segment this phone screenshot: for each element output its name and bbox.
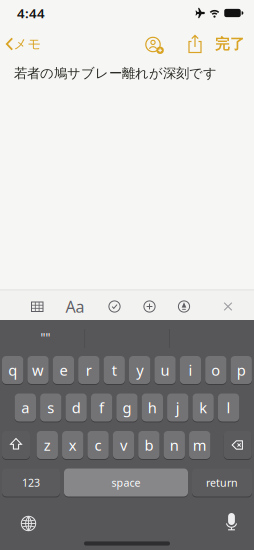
staticText: b xyxy=(144,435,153,455)
staticText: return xyxy=(206,475,238,490)
staticText: f xyxy=(99,398,104,417)
staticText: 123 xyxy=(22,475,40,490)
staticText: メモ xyxy=(13,36,41,52)
button[interactable]: メモに戻る xyxy=(2,31,46,57)
button[interactable]: return xyxy=(192,468,252,496)
button[interactable]: j xyxy=(167,393,188,421)
button[interactable]: l xyxy=(218,393,239,421)
staticText: t xyxy=(112,360,117,380)
button[interactable]: v xyxy=(113,431,134,459)
staticText: 4:44 xyxy=(17,4,45,22)
button[interactable]: f xyxy=(91,393,112,421)
staticText: 若者の鳩サブレー離れが深刻です xyxy=(14,65,217,81)
staticText: p xyxy=(237,360,246,380)
button[interactable]: d xyxy=(65,393,87,421)
button[interactable]: マークアップ xyxy=(176,298,192,314)
button[interactable]: シフト xyxy=(2,431,30,459)
staticText: j xyxy=(176,398,180,417)
staticText: 完了 xyxy=(215,35,245,53)
staticText: a xyxy=(21,398,29,417)
staticText: z xyxy=(44,435,51,455)
staticText: k xyxy=(199,398,207,417)
staticText: o xyxy=(211,360,220,380)
button[interactable]: y xyxy=(129,356,150,384)
button[interactable]: k xyxy=(192,393,214,421)
staticText: g xyxy=(122,398,131,417)
staticText: space xyxy=(111,475,140,490)
button[interactable]: x xyxy=(62,431,83,459)
button[interactable]: 共同制作 xyxy=(141,32,167,58)
staticText: x xyxy=(69,435,77,455)
button[interactable]: o xyxy=(205,356,226,384)
button[interactable]: w xyxy=(27,356,49,384)
staticText: y xyxy=(136,360,143,380)
button[interactable]: チェックリスト xyxy=(106,298,122,314)
button[interactable]: 完了 xyxy=(215,35,245,53)
staticText: m xyxy=(193,435,207,455)
button[interactable]: a xyxy=(15,393,36,421)
button[interactable]: 次のキーボード xyxy=(0,498,58,548)
button[interactable]: c xyxy=(87,431,109,459)
button[interactable]: "" xyxy=(3,323,87,351)
button[interactable]: n xyxy=(164,431,185,459)
button[interactable]: 123 xyxy=(2,468,60,496)
staticText: s xyxy=(47,398,54,417)
button[interactable]: m xyxy=(189,431,210,459)
staticText: "" xyxy=(40,329,50,345)
button[interactable]: 音声入力 xyxy=(201,497,254,547)
staticText: c xyxy=(95,435,102,455)
button[interactable]: t xyxy=(104,356,125,384)
staticText: u xyxy=(160,360,169,380)
button[interactable]: r xyxy=(78,356,99,384)
staticText: q xyxy=(8,360,17,380)
staticText: h xyxy=(148,398,157,417)
button[interactable]: 書式 xyxy=(65,296,84,317)
button[interactable]: 添付 xyxy=(141,298,157,314)
staticText: r xyxy=(86,360,92,380)
button[interactable]: i xyxy=(180,356,201,384)
button[interactable]: 削除 xyxy=(224,431,252,459)
button[interactable]: q xyxy=(2,356,23,384)
staticText: w xyxy=(32,360,44,380)
button[interactable]: g xyxy=(116,393,138,421)
button[interactable]: 共有 xyxy=(183,31,207,57)
button[interactable]: space xyxy=(64,468,188,496)
button[interactable]: h xyxy=(142,393,163,421)
button[interactable]: s xyxy=(40,393,61,421)
button[interactable]: z xyxy=(37,431,58,459)
button[interactable]: 表 xyxy=(27,297,47,317)
button[interactable]: u xyxy=(154,356,176,384)
button[interactable]: e xyxy=(53,356,74,384)
button[interactable]: キーボードを閉じる xyxy=(220,298,236,314)
staticText: n xyxy=(170,435,179,455)
staticText: i xyxy=(188,360,192,380)
staticText: d xyxy=(72,398,81,417)
staticText: v xyxy=(120,435,127,455)
staticText: Aa xyxy=(65,296,84,317)
button[interactable]: p xyxy=(231,356,252,384)
button[interactable]: b xyxy=(138,431,159,459)
staticText: e xyxy=(59,360,67,380)
staticText: l xyxy=(226,398,230,417)
